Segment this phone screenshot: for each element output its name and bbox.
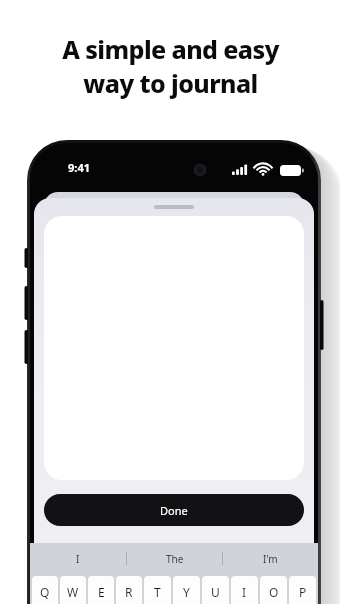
button[interactable]: E [88, 576, 114, 604]
button[interactable]: Y [173, 576, 200, 604]
button[interactable]: I [30, 543, 126, 574]
button[interactable]: Q [32, 576, 58, 604]
button[interactable]: W [60, 576, 86, 604]
staticText: Done [160, 503, 188, 518]
staticText: P [299, 584, 307, 600]
button[interactable]: P [289, 576, 316, 604]
staticText: T [154, 584, 161, 600]
staticText: Q [40, 584, 50, 600]
staticText: I [242, 584, 247, 600]
button[interactable]: I'm [223, 543, 318, 574]
staticText: I [76, 552, 80, 566]
staticText: 9:41 [68, 160, 90, 175]
button[interactable]: I [231, 576, 258, 604]
button[interactable]: R [116, 576, 142, 604]
staticText: R [125, 584, 133, 600]
staticText: way to journal [83, 66, 258, 100]
staticText: O [269, 584, 279, 600]
staticText: A simple and easy [62, 32, 279, 66]
staticText: I'm [263, 552, 278, 566]
button[interactable]: Done [44, 494, 304, 526]
button[interactable]: O [260, 576, 287, 604]
button[interactable]: U [202, 576, 229, 604]
button[interactable]: T [144, 576, 171, 604]
staticText: W [67, 584, 79, 600]
staticText: The [166, 552, 184, 566]
staticText: E [98, 584, 105, 600]
staticText: U [211, 584, 220, 600]
staticText: Y [183, 584, 190, 600]
button[interactable]: The [127, 543, 222, 574]
